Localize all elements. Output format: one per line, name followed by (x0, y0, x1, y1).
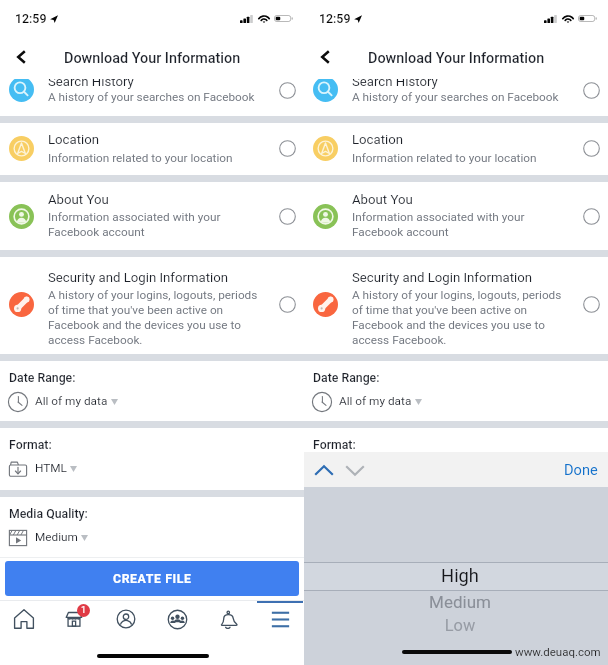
staticText: 12:59 (319, 11, 351, 26)
staticText: Download Your Information (368, 50, 545, 67)
staticText: Information related to your location (48, 151, 233, 165)
staticText: Information related to your location (352, 151, 537, 165)
button[interactable]: Menu (257, 603, 303, 635)
button[interactable]: Marketplace (51, 603, 97, 635)
button[interactable]: Select (576, 133, 606, 163)
button[interactable]: Select (272, 133, 302, 163)
staticText: Medium (35, 530, 78, 544)
button[interactable]: About You (0, 182, 304, 250)
staticText: All of my data (35, 394, 108, 408)
staticText: 12:59 (15, 11, 47, 26)
staticText: High (308, 565, 608, 586)
button[interactable]: Select (272, 79, 302, 105)
button[interactable]: Back (4, 35, 38, 78)
button[interactable]: Select (272, 289, 302, 319)
staticText: A history of your searches on Facebook (48, 90, 255, 104)
staticText: Information associated with your Faceboo… (352, 210, 525, 239)
button[interactable]: Security and Login Information (304, 257, 608, 354)
staticText: HTML (35, 461, 67, 475)
staticText: Low (308, 616, 608, 635)
staticText: Security and Login Information (48, 270, 228, 285)
button[interactable]: Location (0, 122, 304, 175)
button[interactable]: Security and Login Information (0, 257, 304, 354)
staticText: A history of your searches on Facebook (352, 90, 559, 104)
button[interactable]: CREATE FILE (5, 561, 299, 596)
staticText: HTML (339, 461, 371, 475)
staticText: All of my data (339, 394, 412, 408)
staticText: A history of your logins, logouts, perio… (48, 288, 258, 347)
staticText: A history of your logins, logouts, perio… (352, 288, 562, 347)
staticText: Format: (313, 438, 356, 452)
button[interactable]: Previous (309, 455, 339, 485)
staticText: Media Quality: (9, 507, 88, 521)
staticText: Date Range: (313, 371, 380, 385)
staticText: Security and Login Information (352, 270, 532, 285)
staticText: Download Your Information (64, 50, 241, 67)
button[interactable]: HTML (309, 455, 388, 482)
button[interactable]: Search History (304, 79, 608, 116)
button[interactable]: Select (272, 201, 302, 231)
staticText: Location (48, 132, 100, 147)
button[interactable]: Search History (0, 79, 304, 116)
staticText: 1 (81, 605, 87, 616)
staticText: www.deuaq.com (515, 645, 601, 658)
staticText: CREATE FILE (113, 572, 192, 586)
staticText: Search History (48, 79, 134, 89)
button[interactable]: Groups (154, 603, 200, 635)
button[interactable]: Back (308, 35, 342, 78)
button[interactable]: Select (576, 289, 606, 319)
staticText: Format: (9, 438, 52, 452)
button[interactable]: All of my data (5, 388, 125, 415)
staticText: Medium (308, 592, 608, 612)
button[interactable]: Home (1, 603, 47, 635)
staticText: Location (352, 132, 404, 147)
button[interactable]: HTML (5, 455, 84, 482)
button[interactable]: Done (554, 452, 608, 487)
button[interactable]: Profile (103, 603, 149, 635)
button[interactable]: Medium (5, 524, 95, 551)
button[interactable]: Notifications (206, 603, 252, 635)
button[interactable]: About You (304, 182, 608, 250)
staticText: Information associated with your Faceboo… (48, 210, 221, 239)
staticText: About You (352, 192, 413, 207)
staticText: Done (564, 461, 598, 478)
button[interactable]: Select (576, 79, 606, 105)
button[interactable]: Next (340, 455, 370, 485)
button[interactable]: Select (576, 201, 606, 231)
staticText: Date Range: (9, 371, 76, 385)
button[interactable]: All of my data (309, 388, 429, 415)
button[interactable]: Location (304, 122, 608, 175)
staticText: About You (48, 192, 109, 207)
staticText: Search History (352, 79, 438, 89)
